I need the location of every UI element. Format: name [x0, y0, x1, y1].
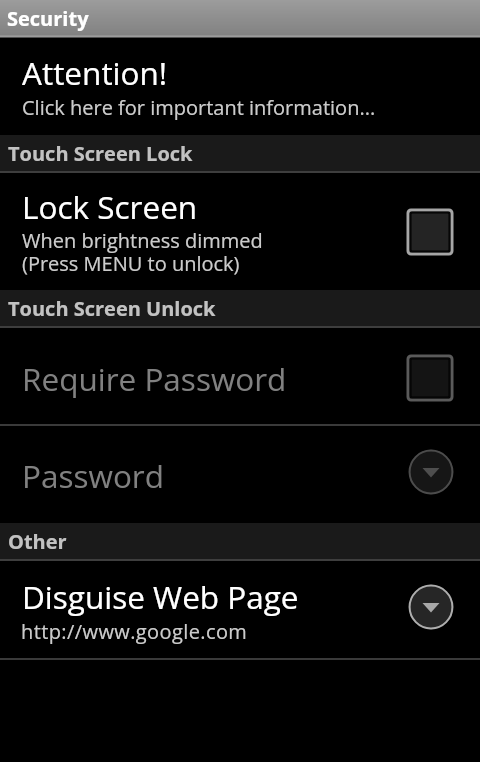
button[interactable]: Disguise Web Page: [0, 561, 480, 658]
staticText: Click here for important information...: [22, 94, 376, 121]
button[interactable]: Lock Screen: [0, 173, 480, 290]
staticText: Touch Screen Lock: [8, 140, 193, 167]
button[interactable]: Security: [0, 0, 480, 38]
button[interactable]: Require Password: [0, 328, 480, 424]
button[interactable]: Password: [0, 426, 480, 523]
staticText: Attention!: [22, 51, 168, 94]
button[interactable]: Disguise Web Page dropdown: [408, 584, 454, 630]
button[interactable]: Lock Screen checkbox: [407, 209, 453, 255]
staticText: When brightness dimmed (Press MENU to un…: [22, 227, 263, 277]
button[interactable]: Password dropdown: [408, 449, 454, 495]
staticText: Touch Screen Unlock: [8, 295, 216, 322]
staticText: http://www.google.com: [21, 618, 248, 645]
staticText: Require Password: [22, 357, 287, 400]
staticText: Lock Screen: [22, 185, 198, 228]
button[interactable]: Require Password checkbox: [407, 355, 453, 401]
staticText: Disguise Web Page: [22, 575, 299, 618]
button[interactable]: Attention!: [0, 38, 480, 135]
staticText: Security: [7, 5, 89, 32]
staticText: Password: [22, 454, 164, 497]
staticText: Other: [8, 528, 67, 555]
